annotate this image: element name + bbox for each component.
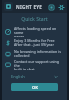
button[interactable]: English xyxy=(2,72,67,81)
staticText: Affects loading speed on some pages xyxy=(14,26,65,37)
staticText: Enjoy 3 Months for Free After that - jus… xyxy=(14,38,55,48)
button[interactable]: No browsing information is collected xyxy=(2,48,67,59)
staticText: No browsing information is collected xyxy=(14,49,61,59)
staticText: OK xyxy=(32,85,38,90)
staticText: Contact our support using the built-in c… xyxy=(14,59,65,70)
staticText: English xyxy=(11,74,25,79)
button[interactable]: Enjoy 3 Months for Free After that - jus… xyxy=(2,37,67,48)
button[interactable]: Night Eye logo xyxy=(4,2,13,11)
button[interactable]: Settings xyxy=(57,3,65,11)
staticText: NIGHT EYE xyxy=(16,4,42,10)
staticText: Quick Start xyxy=(2,16,67,23)
button[interactable]: OK xyxy=(11,83,58,91)
button[interactable]: Affects loading speed on some pages xyxy=(2,26,67,37)
button[interactable]: Contact our support using the built-in c… xyxy=(2,59,67,70)
button[interactable]: Toggle dark mode xyxy=(47,3,55,11)
